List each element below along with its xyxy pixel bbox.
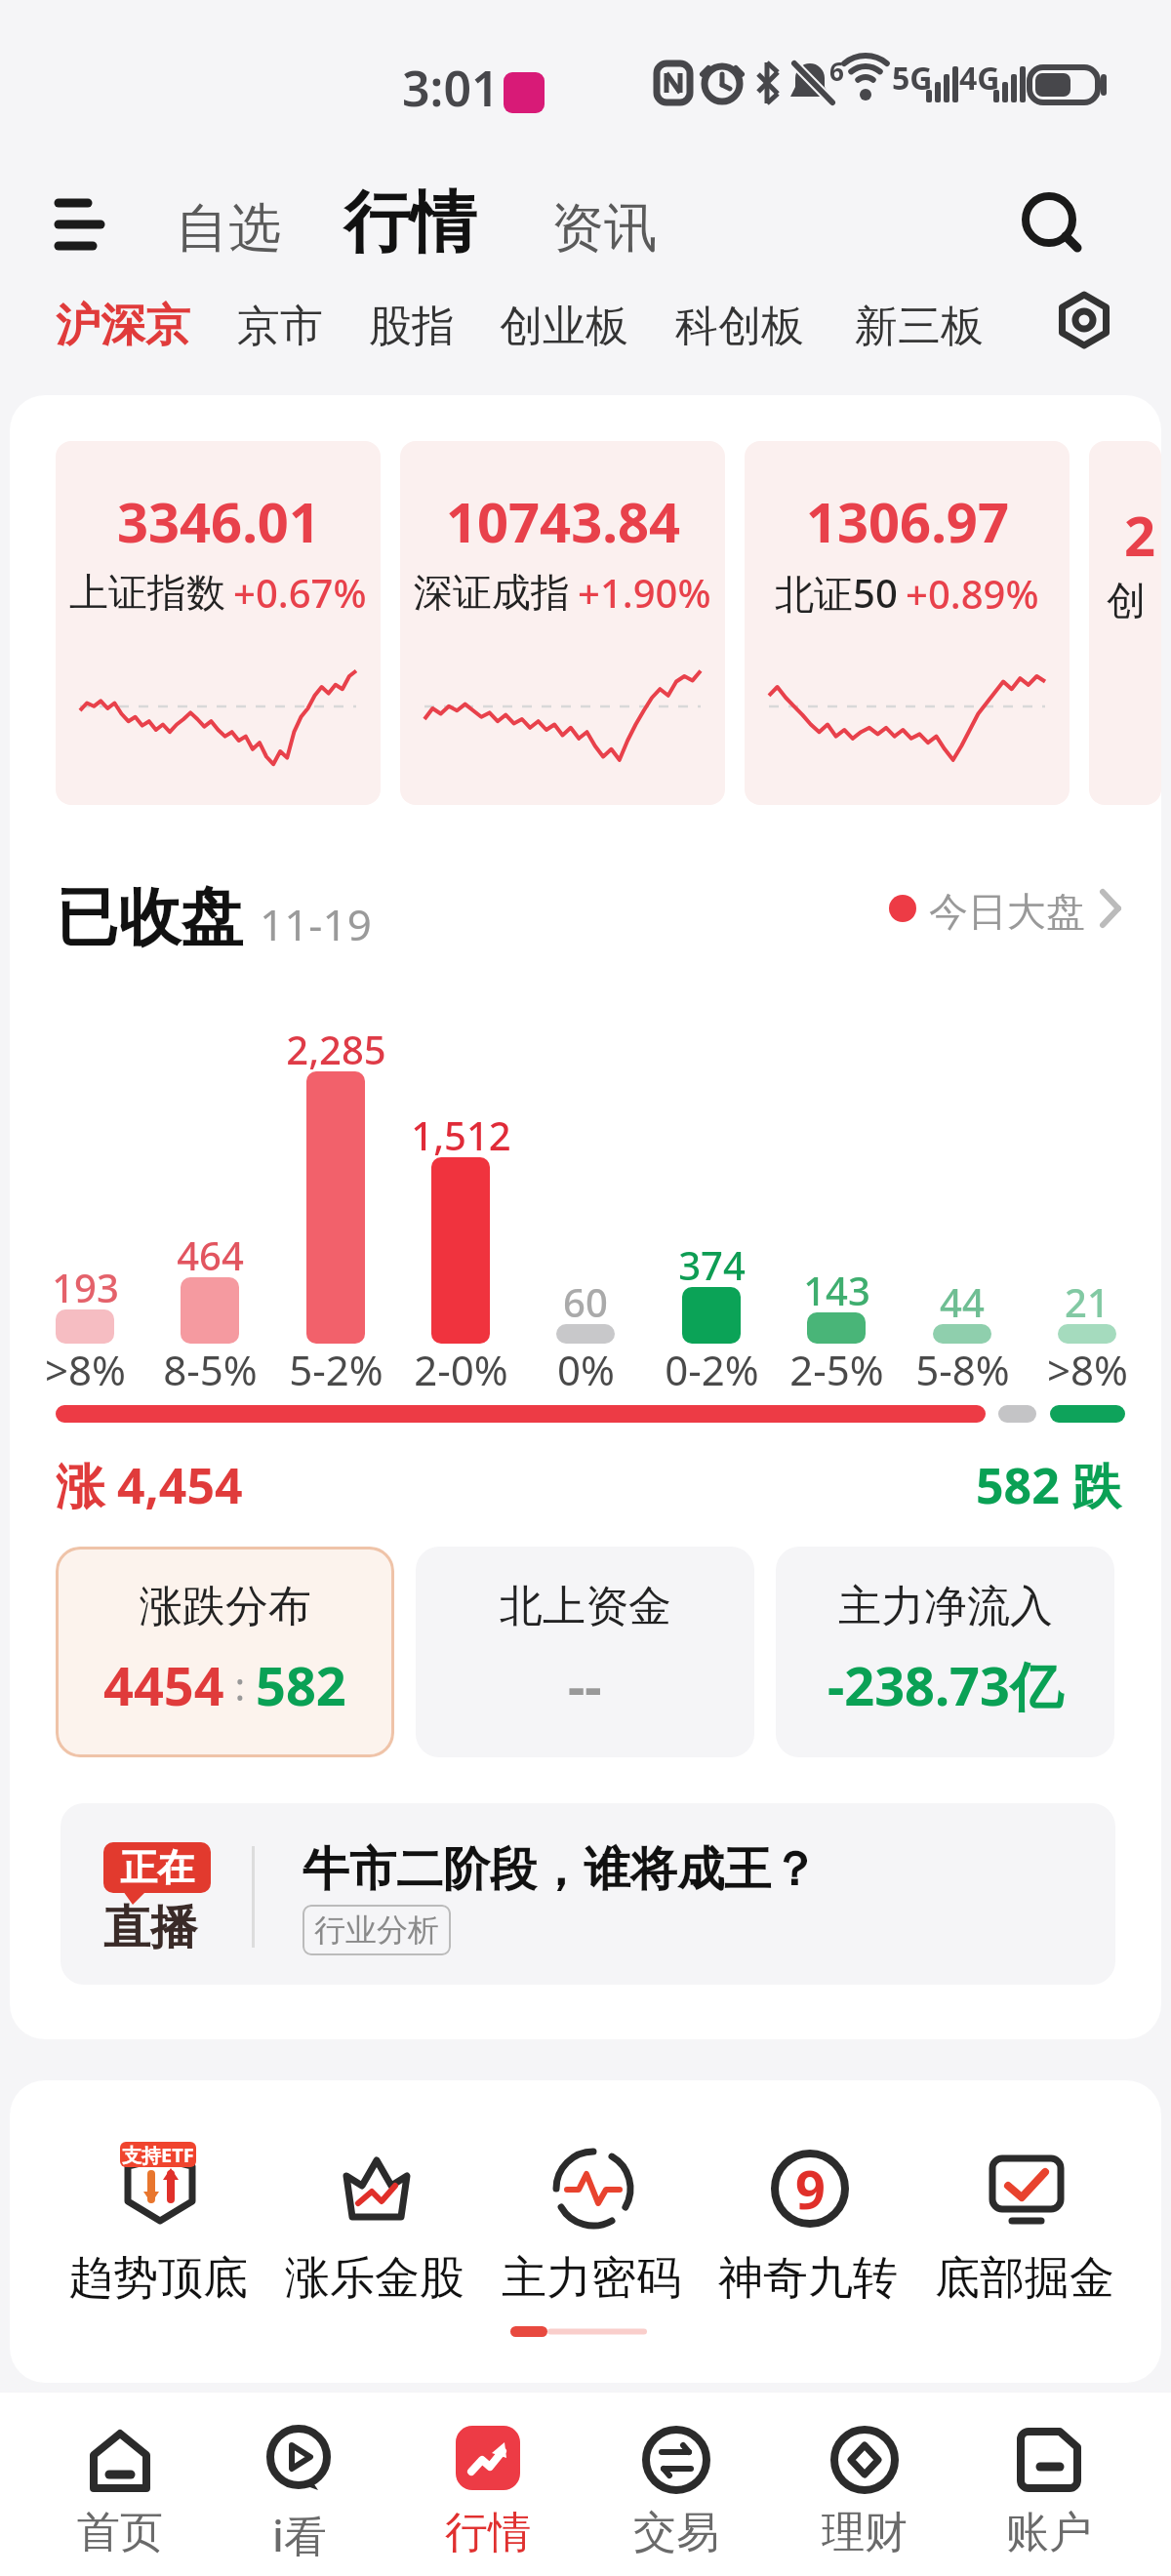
staticText: 理财 [822,2506,908,2559]
staticText: 神奇九转 [718,2250,898,2307]
staticText: 支持ETF [122,2142,194,2167]
button[interactable]: 京市 [237,300,323,353]
button[interactable]: 1306.97 [745,441,1070,805]
staticText: 143 [803,1264,870,1316]
staticText: 今日大盘 [929,887,1085,936]
button[interactable]: 正在 [61,1803,1115,1985]
staticText: 牛市二阶段，谁将成王？ [303,1840,818,1899]
staticText: 1,512 [411,1108,511,1161]
staticText: 已收盘 [56,878,243,957]
button[interactable]: 涨乐金股 [277,2110,472,2334]
button[interactable]: 自选 [176,195,281,262]
staticText: -238.73亿 [828,1649,1063,1721]
button[interactable]: 资讯 [551,195,657,262]
staticText: 2-5% [789,1342,884,1397]
staticText: 新三板 [855,300,984,353]
staticText: +0.67% [233,566,367,619]
staticText: 交易 [633,2506,719,2559]
staticText: 涨 4,454 [56,1452,243,1518]
staticText: i看 [272,2506,327,2564]
button[interactable]: 创业板 [500,300,628,353]
staticText: 2,285 [286,1023,386,1075]
staticText: 账户 [1006,2506,1092,2559]
button[interactable]: 3346.01 [56,441,381,805]
staticText: 行情 [445,2506,531,2559]
button[interactable]: 沪深京 [56,298,190,354]
staticText: 0% [557,1342,615,1397]
staticText: 5G [892,57,933,100]
button[interactable]: 新三板 [855,300,984,353]
button[interactable]: 9 [710,2110,906,2334]
button[interactable]: 涨跌分布 [56,1547,394,1757]
button[interactable]: i看 [222,2402,378,2570]
staticText: 44 [940,1275,985,1328]
staticText: 5-8% [915,1342,1010,1397]
staticText: 0-2% [665,1342,759,1397]
staticText: 193 [52,1261,119,1313]
staticText: >8% [1047,1342,1128,1397]
staticText: 8-5% [163,1342,258,1397]
staticText: 沪深京 [56,298,190,354]
button[interactable] [1015,190,1093,259]
staticText: 11-19 [260,895,372,953]
staticText: 2 [1124,498,1156,572]
staticText: 底部掘金 [935,2250,1114,2307]
staticText: -- [568,1649,602,1721]
staticText: 主力密码 [502,2250,681,2307]
staticText: 趋势顶底 [68,2250,248,2307]
staticText: 1306.97 [806,484,1009,558]
button[interactable]: 主力净流入 [776,1547,1114,1757]
staticText: >8% [45,1342,126,1397]
staticText: 创 [1107,576,1146,624]
staticText: 582 跌 [976,1452,1121,1518]
staticText: 行情 [343,181,476,265]
staticText: 正在 [120,1844,194,1891]
button[interactable]: 10743.84 [400,441,725,805]
staticText: +1.90% [578,566,711,619]
button[interactable]: 底部掘金 [927,2110,1122,2334]
staticText: 9 [795,2153,826,2225]
staticText: 首页 [77,2506,163,2559]
staticText: 上证指数 [69,568,225,617]
staticText: : [224,1659,256,1711]
button[interactable] [44,185,122,263]
staticText: 582 [256,1649,346,1721]
staticText: 资讯 [551,195,657,262]
button[interactable]: 股指 [369,300,455,353]
button[interactable]: 科创板 [675,300,804,353]
staticText: 6 [829,54,844,88]
button[interactable]: 行情 [343,181,476,265]
staticText: 3:01 [402,55,500,121]
staticText: 60 [563,1275,608,1328]
button[interactable]: 账户 [971,2402,1127,2570]
button[interactable]: 支持ETF [61,2110,256,2334]
staticText: 股指 [369,300,455,353]
button[interactable] [1052,288,1116,352]
button[interactable]: 今日大盘 [868,873,1122,942]
staticText: 北上资金 [500,1580,671,1633]
staticText: 21 [1065,1275,1110,1328]
button[interactable]: 首页 [42,2402,198,2570]
staticText: 主力净流入 [838,1580,1053,1633]
staticText: 涨跌分布 [140,1580,311,1633]
button[interactable]: 北上资金 [416,1547,754,1757]
staticText: 创业板 [500,300,628,353]
button[interactable]: 理财 [787,2402,943,2570]
staticText: 5-2% [289,1342,384,1397]
button[interactable]: 主力密码 [494,2110,689,2334]
staticText: 直播 [103,1899,197,1957]
staticText: +0.89% [906,567,1039,620]
button[interactable]: 行情 [410,2402,566,2570]
staticText: 10743.84 [446,484,680,558]
staticText: 深证成指 [414,568,570,617]
staticText: 自选 [176,195,281,262]
staticText: 374 [678,1238,746,1291]
staticText: 464 [177,1228,244,1281]
staticText: 涨乐金股 [285,2250,464,2307]
staticText: 行业分析 [314,1911,439,1950]
staticText: 京市 [237,300,323,353]
button[interactable]: 交易 [598,2402,754,2570]
staticText: 北证50 [775,566,898,620]
button[interactable]: 2 [1089,441,1161,805]
staticText: 科创板 [675,300,804,353]
